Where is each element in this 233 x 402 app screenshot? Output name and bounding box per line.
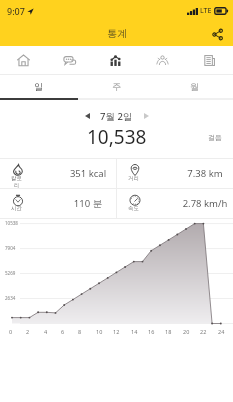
staticText: 9:07	[7, 5, 25, 17]
button[interactable]: News	[186, 46, 233, 74]
staticText: 8	[78, 328, 82, 335]
staticText: 주	[112, 81, 121, 92]
staticText: 12	[113, 328, 120, 335]
button[interactable]: Next day	[138, 108, 154, 124]
staticText: 걸음	[208, 133, 222, 142]
button[interactable]: 월	[155, 75, 233, 98]
staticText: 5269	[5, 270, 16, 276]
staticText: 4	[44, 328, 48, 335]
staticText: 통계	[107, 27, 127, 40]
staticText: 7904	[5, 245, 16, 251]
button[interactable]: 일	[0, 75, 77, 98]
staticText: 일	[34, 81, 43, 92]
button[interactable]: 거리	[117, 159, 233, 188]
staticText: 10538	[5, 220, 18, 226]
staticText: 2	[26, 328, 30, 335]
staticText: 24	[218, 328, 225, 335]
staticText: 16	[148, 328, 155, 335]
button[interactable]: Friends	[139, 46, 186, 74]
button[interactable]: 칼로리	[0, 159, 116, 188]
staticText: LTE	[200, 6, 212, 16]
button[interactable]: 주	[77, 75, 155, 98]
staticText: 14	[131, 328, 138, 335]
button[interactable]: Share	[207, 24, 227, 44]
staticText: 110 분	[52, 197, 124, 210]
staticText: 351 kcal	[52, 167, 124, 180]
staticText: 거리	[126, 175, 141, 182]
staticText: 7.38 km	[169, 167, 233, 180]
button[interactable]: 속도	[117, 189, 233, 218]
staticText: 0	[9, 328, 13, 335]
staticText: 월	[190, 81, 199, 92]
button[interactable]: Home	[0, 46, 46, 74]
staticText: 속도	[126, 205, 141, 212]
staticText: 22	[200, 328, 207, 335]
staticText: 10	[96, 328, 103, 335]
button[interactable]: Previous day	[79, 108, 95, 124]
staticText: 20	[183, 328, 190, 335]
staticText: 칼로리	[9, 175, 24, 189]
button[interactable]: 시간	[0, 189, 116, 218]
staticText: 10,538	[87, 124, 147, 149]
staticText: 6	[61, 328, 65, 335]
button[interactable]: Messages	[46, 46, 92, 74]
staticText: 18	[165, 328, 172, 335]
staticText: 2.78 km/h	[169, 197, 233, 210]
staticText: 시간	[9, 205, 24, 212]
staticText: 7월 2일	[100, 110, 133, 123]
staticText: 2634	[5, 295, 16, 301]
button[interactable]: Statistics	[92, 46, 139, 74]
